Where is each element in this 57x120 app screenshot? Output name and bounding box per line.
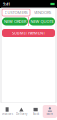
staticText: VENDORS [34,10,51,15]
button[interactable]: Invoices [0,105,14,118]
staticText: Delivery [16,112,27,116]
button[interactable]: Delivery [14,105,28,118]
staticText: Stock [33,112,39,116]
staticText: NEW ORDER [4,19,26,24]
button[interactable]: SUBMIT PAYMENT [2,29,55,37]
staticText: More [46,112,53,116]
button[interactable]: VENDORS [30,9,55,16]
staticText: Invoices [2,112,13,116]
button[interactable]: NEW ORDER [2,17,28,25]
button[interactable]: More [43,105,57,118]
button[interactable]: Stock [28,105,43,118]
staticText: CUSTOMERS [4,10,27,15]
staticText: NEW QUOTE [30,19,53,24]
button[interactable]: CUSTOMERS [2,9,30,16]
staticText: SUBMIT PAYMENT [12,30,45,36]
button[interactable]: NEW QUOTE [29,17,55,25]
staticText: 9:41 [3,1,10,7]
